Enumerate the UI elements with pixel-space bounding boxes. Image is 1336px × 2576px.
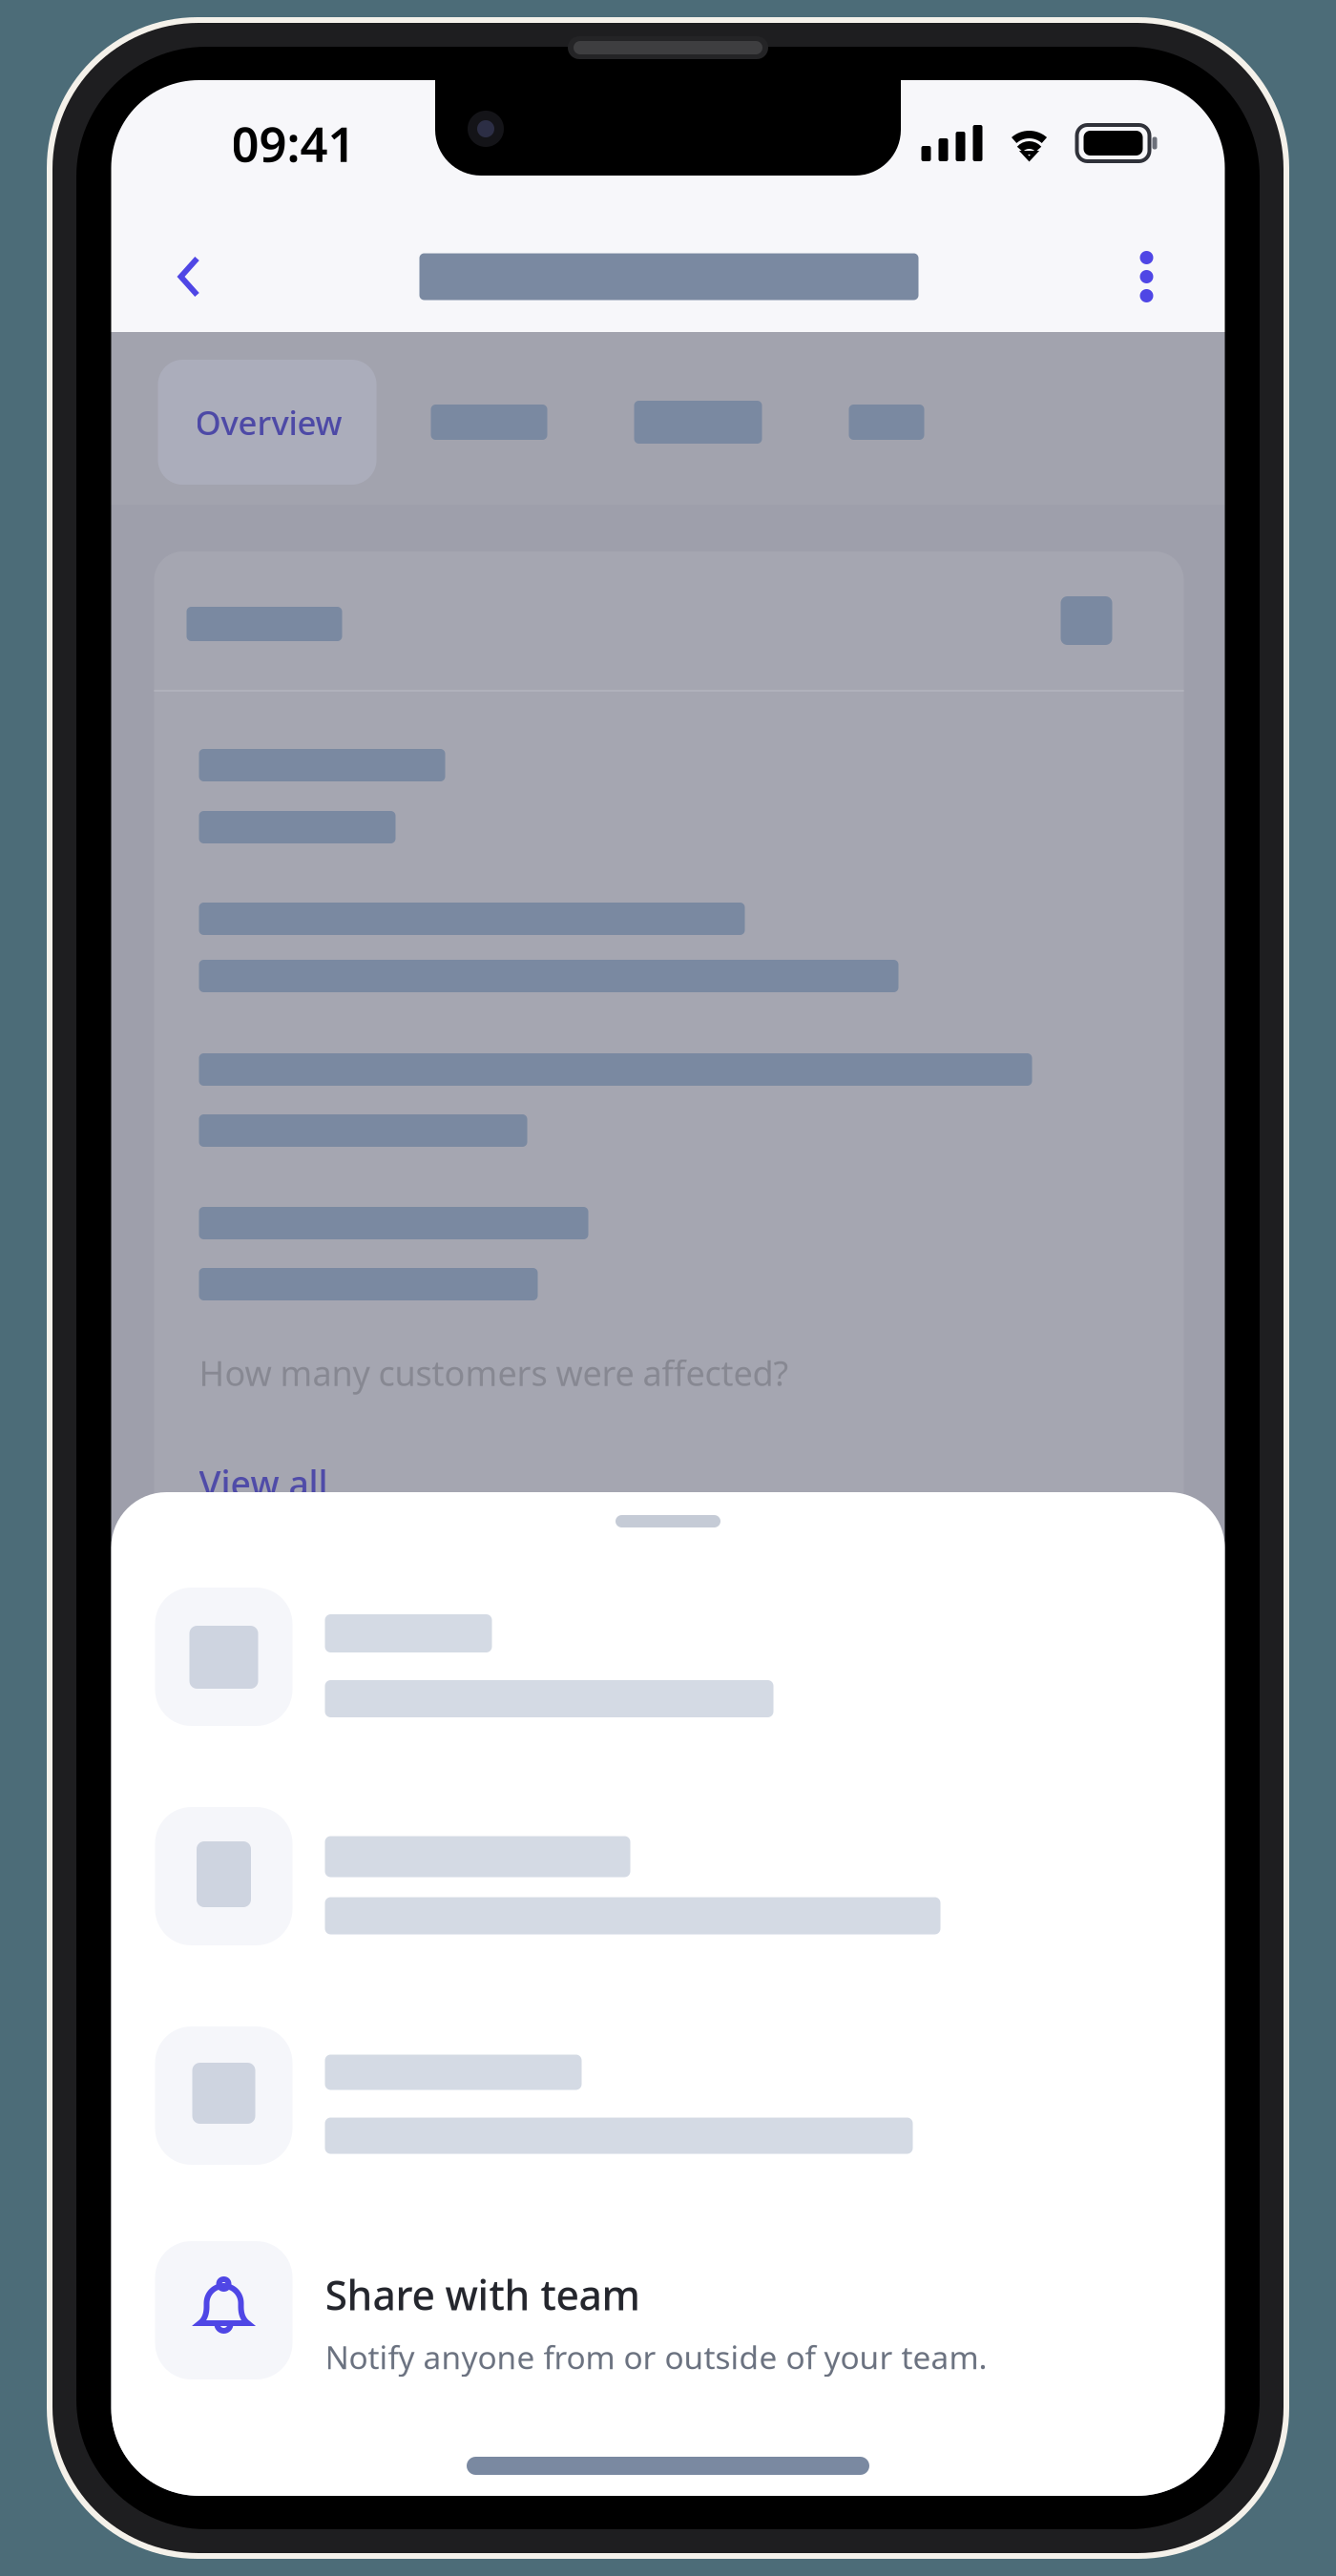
- button[interactable]: [155, 1588, 1181, 1726]
- button[interactable]: Overview: [158, 360, 376, 485]
- button[interactable]: [155, 1807, 1181, 1945]
- button[interactable]: View all: [199, 1460, 328, 1507]
- staticText: View all: [199, 1460, 328, 1507]
- button[interactable]: [155, 2026, 1181, 2165]
- staticText: How many customers were affected?: [199, 1350, 789, 1396]
- button[interactable]: Share with team: [155, 2241, 1181, 2379]
- button[interactable]: [849, 360, 924, 485]
- button[interactable]: Back: [173, 214, 265, 340]
- staticText: Notify anyone from or outside of your te…: [325, 2336, 987, 2378]
- staticText: Overview: [195, 400, 342, 444]
- button[interactable]: [431, 360, 547, 485]
- staticText: Share with team: [325, 2267, 640, 2321]
- button[interactable]: [634, 360, 762, 485]
- button[interactable]: More options: [1062, 214, 1153, 340]
- staticText: 09:41: [231, 111, 355, 175]
